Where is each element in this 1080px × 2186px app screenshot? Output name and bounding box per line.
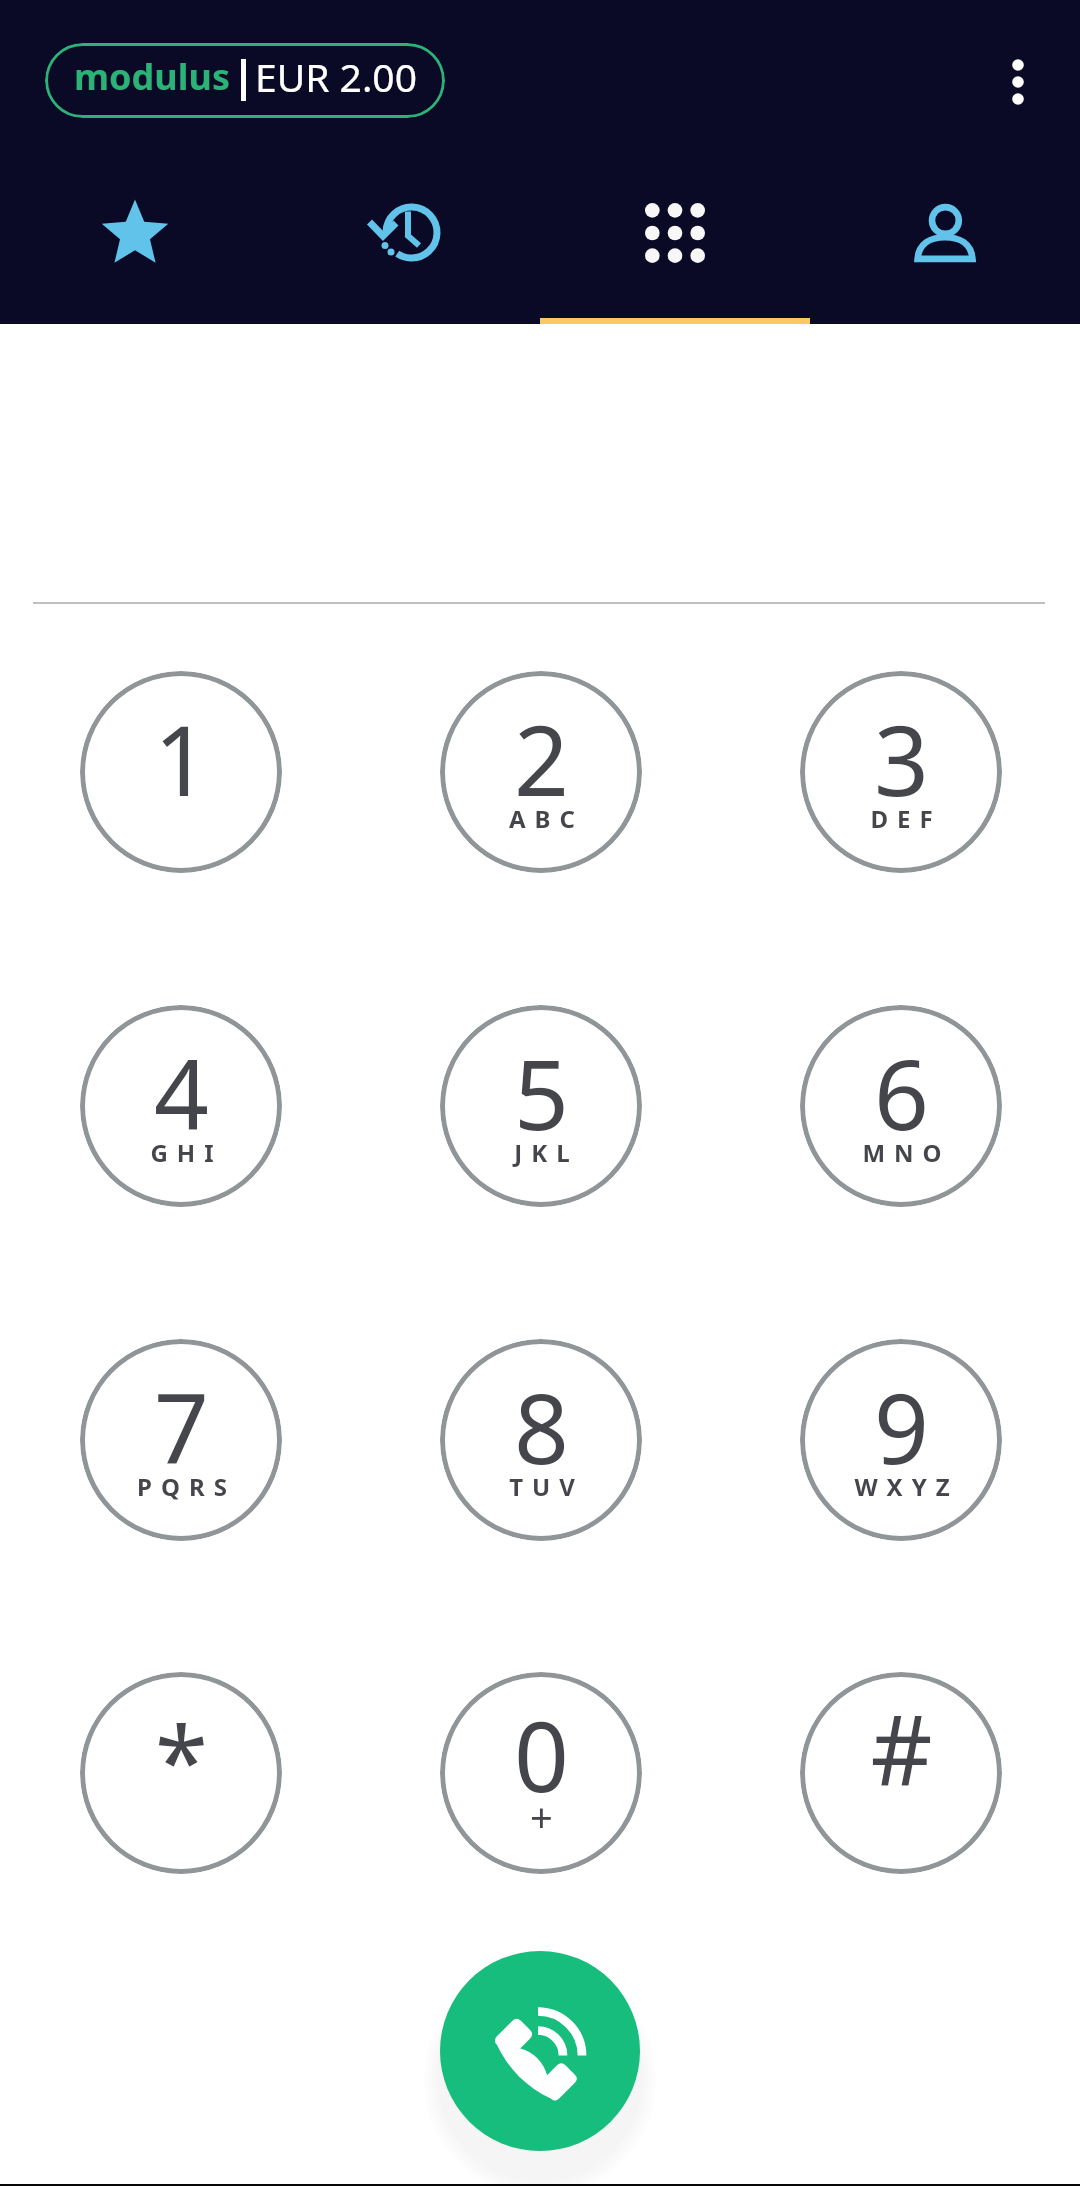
button[interactable]: 3 [800,671,1002,873]
button[interactable]: 7 [80,1339,282,1541]
staticText: # [870,1682,933,1813]
staticText: 9 [874,1361,929,1492]
staticText: 6 [874,1027,929,1158]
button[interactable]: Dialpad [540,168,810,298]
staticText: MNO [862,1136,951,1169]
staticText: JKL [514,1136,579,1169]
button[interactable]: Contacts [810,168,1080,298]
button[interactable]: * [80,1672,282,1874]
button[interactable]: 1 [80,671,282,873]
button[interactable]: Favourites [0,168,270,298]
button[interactable]: More options [978,42,1058,122]
staticText: PQRS [137,1470,236,1503]
staticText: ABC [509,802,584,835]
button[interactable]: 6 [800,1005,1002,1207]
button[interactable]: 5 [440,1005,642,1207]
button[interactable]: Call [440,1951,640,2151]
staticText: GHI [150,1136,223,1169]
staticText: * [155,1694,208,1825]
staticText: modulus [74,52,230,101]
staticText: DEF [870,802,942,835]
staticText: 5 [514,1027,569,1158]
button[interactable]: 8 [440,1339,642,1541]
button[interactable]: 9 [800,1339,1002,1541]
button[interactable]: 4 [80,1005,282,1207]
staticText: 0 [514,1689,569,1820]
button[interactable]: 0 [440,1672,642,1874]
staticText: EUR 2.00 [255,50,417,103]
button[interactable]: 2 [440,671,642,873]
button[interactable]: # [800,1672,1002,1874]
staticText: 4 [154,1027,209,1158]
staticText: + [530,1789,553,1843]
staticText: 1 [154,693,209,824]
staticText: WXYZ [854,1470,959,1503]
staticText: TUV [509,1470,584,1503]
staticText: 3 [874,693,929,824]
staticText: 2 [514,693,569,824]
button[interactable]: modulus [45,43,445,118]
staticText: 7 [154,1361,209,1492]
staticText: 8 [514,1361,569,1492]
button[interactable]: Recents [270,168,540,298]
